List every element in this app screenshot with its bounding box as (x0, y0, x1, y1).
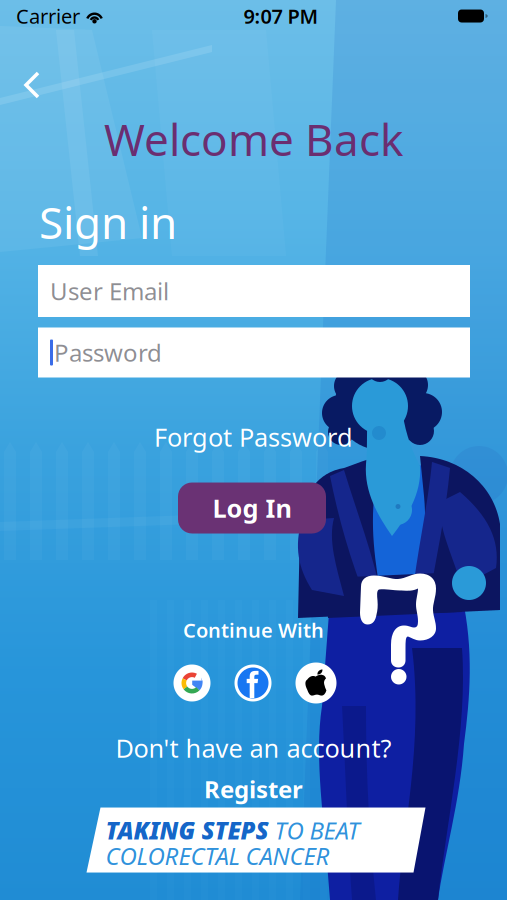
staticText: Don't have an account? (115, 731, 391, 765)
staticText: Sign in (39, 193, 177, 251)
staticText: Continue With (183, 617, 324, 643)
staticText: Forgot Password (154, 420, 353, 454)
button[interactable]: Forgot Password (138, 419, 368, 455)
button[interactable]: Continue with Google (173, 664, 210, 701)
staticText: Log In (212, 491, 291, 525)
button[interactable]: Continue with Facebook (234, 664, 271, 701)
staticText: TO BEAT (274, 817, 359, 843)
staticText: Carrier (16, 3, 80, 29)
staticText: Welcome Back (104, 110, 403, 168)
staticText: Password (54, 337, 162, 368)
staticText: User Email (50, 275, 169, 307)
button[interactable]: Register (188, 774, 318, 804)
staticText: 9:07 PM (243, 3, 318, 29)
button[interactable]: Continue with Apple (295, 662, 336, 703)
staticText: Register (204, 773, 303, 805)
button[interactable]: Log In (178, 482, 326, 533)
staticText: TAKING STEPS (105, 817, 268, 843)
staticText: COLORECTAL CANCER (105, 843, 329, 868)
button[interactable]: Back (4, 58, 60, 112)
